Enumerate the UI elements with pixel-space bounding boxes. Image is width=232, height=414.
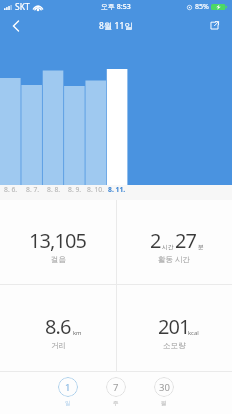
staticText: 13,105 bbox=[29, 227, 87, 254]
staticText: 분 bbox=[198, 243, 204, 250]
staticText: 8. 8. bbox=[47, 185, 61, 194]
staticText: 일 bbox=[65, 400, 71, 407]
staticText: 1 bbox=[65, 381, 71, 394]
button[interactable]: 8.6 bbox=[0, 286, 116, 372]
staticText: SKT bbox=[15, 1, 30, 13]
button[interactable]: Back bbox=[0, 13, 30, 38]
button[interactable]: 201 bbox=[116, 286, 232, 372]
staticText: 주 bbox=[113, 400, 119, 407]
button[interactable]: 7 bbox=[106, 377, 126, 407]
staticText: 8. 9. bbox=[68, 185, 82, 194]
staticText: kcal bbox=[188, 329, 199, 337]
staticText: 7 bbox=[113, 381, 119, 394]
staticText: 2 bbox=[150, 227, 161, 254]
staticText: 8월 11일 bbox=[99, 20, 133, 32]
staticText: 소모량 bbox=[163, 341, 186, 350]
button[interactable]: 1 bbox=[58, 377, 78, 407]
staticText: 8. 11. bbox=[108, 185, 126, 194]
staticText: 201 bbox=[158, 313, 190, 340]
staticText: 27 bbox=[175, 227, 197, 254]
staticText: 30 bbox=[159, 381, 170, 394]
staticText: 8.6 bbox=[45, 313, 71, 340]
staticText: 월 bbox=[161, 400, 167, 407]
button[interactable]: 30 bbox=[154, 377, 174, 407]
staticText: km bbox=[73, 329, 82, 337]
staticText: 8. 7. bbox=[26, 185, 40, 194]
staticText: 8. 6. bbox=[4, 185, 18, 194]
button[interactable]: Share bbox=[202, 13, 232, 38]
staticText: 거리 bbox=[51, 341, 66, 350]
staticText: 85% bbox=[195, 2, 209, 12]
staticText: 걸음 bbox=[51, 255, 66, 264]
staticText: 오후 8:53 bbox=[101, 2, 131, 12]
button[interactable]: 13,105 bbox=[0, 200, 116, 286]
staticText: 시간 bbox=[162, 243, 174, 250]
staticText: 활동 시간 bbox=[158, 254, 190, 264]
staticText: 8. 10. bbox=[87, 185, 105, 194]
button[interactable]: 2 bbox=[116, 200, 232, 286]
